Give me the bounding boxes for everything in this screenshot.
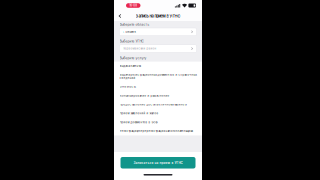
button[interactable]: Консультирование и разъяснение bbox=[114, 91, 202, 100]
button[interactable]: г. Бишкек bbox=[119, 28, 196, 36]
button[interactable]: Прием документов в ЭСФ bbox=[114, 118, 202, 127]
staticText: Прием заявлений и жалоб bbox=[119, 112, 158, 115]
staticText: Отчетность bbox=[119, 85, 135, 88]
button[interactable]: Выдача патента bbox=[114, 62, 202, 70]
staticText: Предоставление доступа к личному кабинет… bbox=[119, 103, 186, 106]
staticText: Выдача патента bbox=[119, 64, 140, 68]
button[interactable]: Предоставление доступа к личному кабинет… bbox=[114, 100, 202, 109]
staticText: Регистрация/перерегистрация налогоплател… bbox=[119, 129, 192, 133]
button[interactable]: Выдача регистрационных документов и спра… bbox=[114, 70, 202, 82]
button[interactable]: Регистрация/перерегистрация налогоплател… bbox=[114, 127, 202, 135]
staticText: Прием документов в ЭСФ bbox=[119, 121, 157, 124]
staticText: Консультирование и разъяснение bbox=[119, 94, 169, 97]
staticText: Первомайский район bbox=[122, 47, 156, 50]
button[interactable]: Прием заявлений и жалоб bbox=[114, 109, 202, 118]
staticText: г. Бишкек bbox=[122, 30, 135, 33]
staticText: Запись на прием в УГНС bbox=[135, 14, 180, 18]
button[interactable]: Отчетность bbox=[114, 82, 202, 91]
staticText: Выдача регистрационных документов и спра… bbox=[119, 73, 196, 80]
button[interactable]: Назад bbox=[114, 11, 126, 21]
staticText: Выберите УГНС bbox=[119, 39, 143, 43]
staticText: 16:08 bbox=[129, 4, 137, 7]
staticText: Записаться на прием в УГНС bbox=[133, 161, 182, 165]
button[interactable]: Записаться на прием в УГНС bbox=[120, 157, 195, 168]
staticText: Выберите услугу bbox=[119, 56, 146, 60]
button[interactable]: Первомайский район bbox=[119, 45, 196, 52]
staticText: Выберите область bbox=[119, 23, 149, 26]
